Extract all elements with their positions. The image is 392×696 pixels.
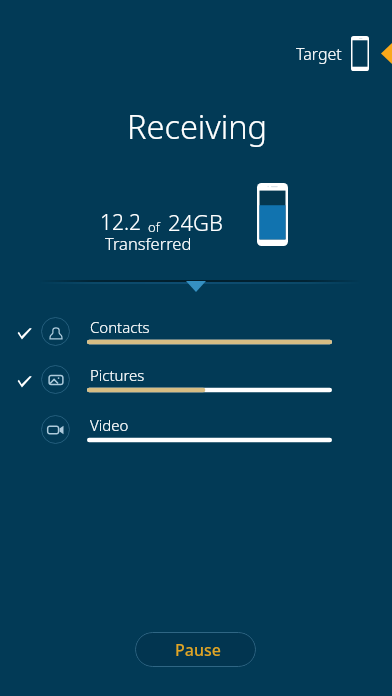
staticText: Pause <box>175 639 221 661</box>
button[interactable]: Video <box>0 405 392 453</box>
button[interactable]: Target <box>296 36 369 71</box>
staticText: 24GB <box>168 207 223 237</box>
staticText: Target <box>296 43 342 65</box>
button[interactable]: Contacts <box>0 307 392 355</box>
other: Target device <box>351 36 369 71</box>
staticText: of <box>148 218 160 236</box>
button[interactable]: Pause <box>135 632 256 667</box>
other: Next <box>381 43 392 64</box>
staticText: Contacts <box>90 317 150 337</box>
button[interactable]: Pictures <box>0 355 392 403</box>
staticText: Transferred <box>105 232 192 254</box>
staticText: Video <box>90 415 129 435</box>
staticText: Receiving <box>1 104 392 148</box>
staticText: 12.2 <box>100 208 142 237</box>
staticText: Pictures <box>90 365 145 385</box>
